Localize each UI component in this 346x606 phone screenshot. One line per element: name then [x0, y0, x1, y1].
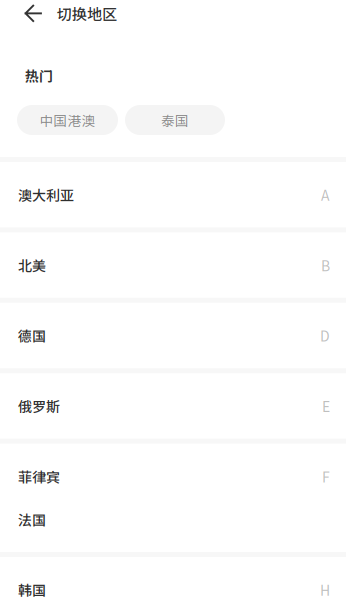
- button[interactable]: 澳大利亚: [0, 173, 346, 216]
- staticText: E: [322, 396, 330, 416]
- button[interactable]: 俄罗斯: [0, 384, 346, 427]
- staticText: 泰国: [161, 110, 189, 130]
- button[interactable]: 法国: [0, 498, 346, 541]
- button[interactable]: 韩国: [0, 568, 346, 606]
- staticText: 法国: [18, 509, 46, 529]
- staticText: 德国: [18, 325, 46, 346]
- staticText: 澳大利亚: [18, 185, 74, 205]
- staticText: 热门: [25, 65, 53, 86]
- button[interactable]: Back: [0, 0, 57, 27]
- button[interactable]: 菲律宾: [0, 455, 346, 498]
- staticText: B: [321, 255, 330, 275]
- staticText: A: [321, 185, 330, 205]
- staticText: 北美: [18, 255, 46, 275]
- staticText: H: [320, 580, 330, 600]
- button[interactable]: 北美: [0, 244, 346, 287]
- button[interactable]: 德国: [0, 314, 346, 357]
- staticText: 俄罗斯: [18, 396, 60, 416]
- staticText: 中国港澳: [39, 110, 95, 130]
- staticText: F: [322, 466, 330, 486]
- button[interactable]: 泰国: [125, 105, 225, 135]
- staticText: 韩国: [18, 580, 46, 600]
- staticText: D: [320, 325, 330, 346]
- button[interactable]: 中国港澳: [17, 105, 118, 135]
- staticText: 切换地区: [57, 3, 117, 24]
- staticText: 菲律宾: [18, 466, 60, 486]
